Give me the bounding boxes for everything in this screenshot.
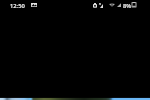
staticText: 12:50 bbox=[10, 2, 25, 10]
button[interactable]: Photo bbox=[0, 97, 150, 100]
staticText: 8% bbox=[123, 2, 132, 10]
